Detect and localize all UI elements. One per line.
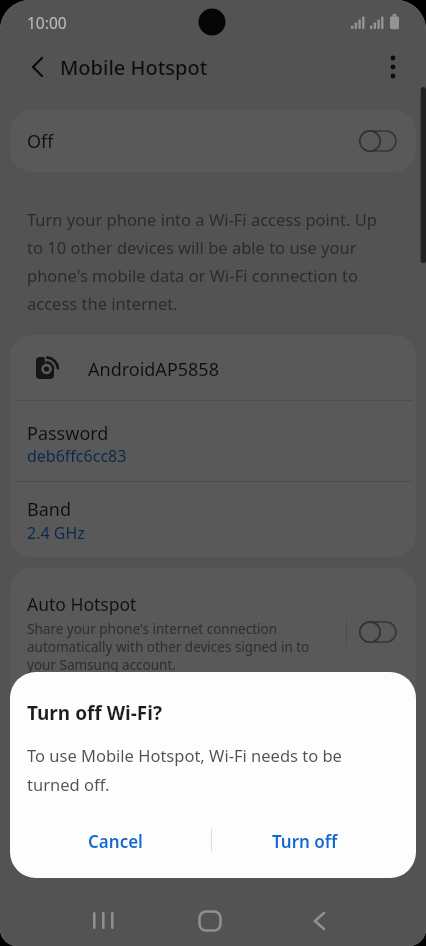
staticText: Band — [27, 497, 71, 522]
staticText: Cancel — [88, 830, 143, 853]
button[interactable] — [378, 50, 408, 84]
staticText: Auto Hotspot — [27, 592, 137, 616]
button[interactable]: Band — [10, 482, 416, 557]
staticText: deb6ffc6cc83 — [27, 445, 127, 467]
button[interactable]: Auto Hotspot — [10, 568, 416, 708]
button[interactable] — [10, 335, 416, 401]
staticText: Share your phone's internet connection a… — [27, 620, 327, 674]
staticText: Turn your phone into a Wi-Fi access poin… — [27, 208, 395, 314]
button[interactable] — [359, 621, 397, 643]
button[interactable] — [188, 899, 232, 943]
staticText: To use Mobile Hotspot, Wi-Fi needs to be… — [27, 744, 377, 796]
button[interactable] — [359, 130, 397, 152]
button[interactable] — [81, 899, 125, 943]
button[interactable] — [20, 50, 54, 84]
staticText: 2.4 GHz — [27, 522, 85, 544]
staticText: Turn off — [272, 830, 338, 853]
button[interactable] — [297, 899, 341, 943]
staticText: 10:00 — [27, 12, 67, 33]
staticText: Mobile Hotspot — [60, 54, 208, 81]
button[interactable]: Cancel — [44, 818, 186, 864]
staticText: Off — [27, 129, 54, 154]
button[interactable]: Turn off — [234, 818, 376, 864]
staticText: Turn off Wi-Fi? — [27, 700, 162, 726]
button[interactable]: Password — [10, 401, 416, 481]
staticText: Password — [27, 421, 109, 446]
button[interactable]: Off — [10, 110, 416, 172]
staticText: AndroidAP5858 — [88, 357, 219, 382]
